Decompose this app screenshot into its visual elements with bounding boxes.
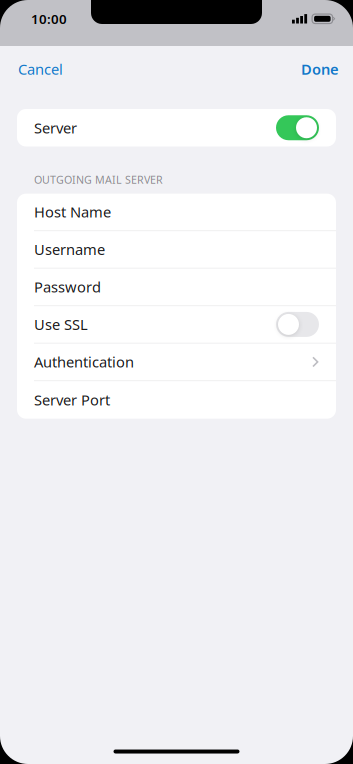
button[interactable]: Use SSL (17, 306, 336, 344)
staticText: OUTGOING MAIL SERVER (34, 172, 163, 187)
button[interactable]: Done (287, 46, 353, 90)
staticText: Use SSL (34, 315, 88, 334)
staticText: Done (301, 59, 339, 79)
button[interactable]: Server Port (17, 381, 336, 419)
button[interactable]: Authentication (17, 344, 336, 381)
staticText: Server (34, 118, 77, 137)
staticText: Password (34, 277, 101, 297)
staticText: 10:00 (31, 10, 67, 28)
staticText: Host Name (34, 202, 111, 222)
button[interactable]: Password (17, 269, 336, 306)
staticText: Server Port (34, 390, 110, 410)
staticText: Authentication (34, 352, 134, 372)
button[interactable]: Cancel (0, 46, 77, 90)
button[interactable]: Host Name (17, 194, 336, 231)
staticText: Username (34, 240, 105, 259)
button[interactable]: Username (17, 231, 336, 269)
button[interactable]: Server (17, 109, 336, 146)
staticText: Cancel (18, 59, 63, 79)
